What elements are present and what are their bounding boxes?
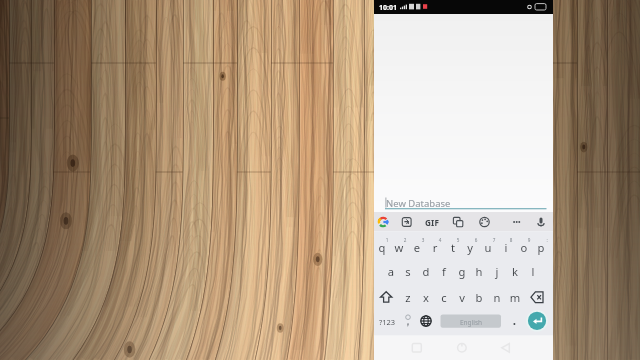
button[interactable]: u bbox=[481, 236, 499, 259]
button[interactable]: b bbox=[472, 284, 491, 309]
staticText: k bbox=[475, 264, 555, 279]
staticText: a bbox=[351, 264, 431, 279]
staticText: 5 bbox=[418, 237, 498, 243]
staticText: English bbox=[431, 318, 511, 327]
staticText: y bbox=[430, 240, 510, 255]
button[interactable]: c bbox=[434, 284, 453, 309]
button[interactable]: Period bbox=[515, 309, 531, 331]
staticText: 9 bbox=[489, 237, 569, 243]
button[interactable]: m bbox=[510, 284, 529, 309]
staticText: s bbox=[368, 264, 448, 279]
button[interactable]: s bbox=[393, 259, 413, 284]
button[interactable]: Stickers bbox=[399, 212, 424, 232]
button[interactable]: l bbox=[533, 259, 553, 284]
staticText: u bbox=[448, 240, 528, 255]
button[interactable]: Translate bbox=[449, 212, 475, 232]
staticText: z bbox=[368, 290, 448, 305]
staticText: l bbox=[493, 264, 573, 279]
button[interactable]: i bbox=[499, 236, 517, 259]
button[interactable]: p bbox=[535, 236, 553, 259]
button[interactable]: w bbox=[391, 236, 409, 259]
staticText: : bbox=[507, 237, 587, 243]
staticText: d bbox=[386, 264, 466, 279]
staticText: f bbox=[404, 264, 484, 279]
button[interactable]: a bbox=[374, 259, 393, 284]
button[interactable]: Enter bbox=[531, 309, 553, 331]
staticText: c bbox=[404, 290, 484, 305]
button[interactable]: New Database text field bbox=[374, 196, 553, 212]
button[interactable]: k bbox=[513, 259, 533, 284]
staticText: ?123 bbox=[347, 317, 427, 327]
staticText: GIF bbox=[392, 217, 472, 228]
staticText: 4 bbox=[400, 237, 480, 243]
staticText: b bbox=[439, 290, 519, 305]
button[interactable]: h bbox=[473, 259, 493, 284]
staticText: r bbox=[395, 240, 475, 255]
staticText: j bbox=[457, 264, 537, 279]
staticText: h bbox=[439, 264, 519, 279]
staticText: n bbox=[457, 290, 537, 305]
button[interactable]: d bbox=[413, 259, 433, 284]
staticText: q bbox=[342, 240, 422, 255]
button[interactable]: o bbox=[517, 236, 535, 259]
button[interactable]: Symbols bbox=[374, 309, 399, 331]
button[interactable]: f bbox=[433, 259, 453, 284]
staticText: 10:01 bbox=[379, 3, 397, 13]
staticText: v bbox=[422, 290, 502, 305]
staticText: g bbox=[422, 264, 502, 279]
button[interactable]: n bbox=[491, 284, 510, 309]
button[interactable]: t bbox=[445, 236, 463, 259]
staticText: m bbox=[475, 290, 555, 305]
button[interactable]: x bbox=[416, 284, 434, 309]
staticText: 2 bbox=[365, 237, 445, 243]
button[interactable]: z bbox=[398, 284, 416, 309]
button[interactable]: Emoji bbox=[399, 309, 416, 331]
staticText: o bbox=[484, 240, 564, 255]
button[interactable]: q bbox=[374, 236, 391, 259]
staticText: 1 bbox=[347, 237, 427, 243]
button[interactable]: GIF bbox=[424, 212, 449, 232]
button[interactable]: Themes bbox=[475, 212, 501, 232]
button[interactable]: Shift bbox=[374, 284, 398, 309]
staticText: New Database bbox=[386, 197, 451, 210]
staticText: t bbox=[413, 240, 493, 255]
button[interactable]: Google search bbox=[374, 212, 399, 232]
button[interactable]: Space bbox=[434, 309, 515, 331]
button[interactable]: Backspace bbox=[529, 284, 553, 309]
button[interactable]: j bbox=[493, 259, 513, 284]
button[interactable]: r bbox=[427, 236, 445, 259]
button[interactable]: e bbox=[409, 236, 427, 259]
staticText: 7 bbox=[454, 237, 534, 243]
button[interactable]: Voice input bbox=[527, 212, 553, 232]
button[interactable]: g bbox=[453, 259, 473, 284]
staticText: x bbox=[386, 290, 466, 305]
staticText: 6 bbox=[436, 237, 516, 243]
button[interactable]: y bbox=[463, 236, 481, 259]
staticText: i bbox=[466, 240, 546, 255]
staticText: e bbox=[377, 240, 457, 255]
staticText: 8 bbox=[471, 237, 551, 243]
staticText: p bbox=[501, 240, 581, 255]
staticText: 3 bbox=[383, 237, 463, 243]
staticText: w bbox=[359, 240, 439, 255]
button[interactable]: Change language bbox=[416, 309, 434, 331]
button[interactable]: More options bbox=[501, 212, 527, 232]
button[interactable]: v bbox=[453, 284, 472, 309]
